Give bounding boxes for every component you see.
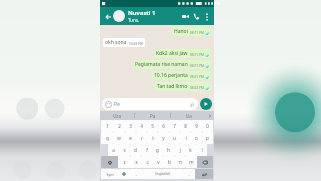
- button[interactable]: e: [125, 132, 136, 144]
- staticText: 08:21 PM: [190, 75, 204, 79]
- staticText: 6: [162, 123, 165, 129]
- button[interactable]: 0: [202, 120, 213, 132]
- button[interactable]: x: [130, 156, 142, 168]
- staticText: d: [134, 147, 137, 153]
- button[interactable]: w: [113, 132, 125, 144]
- button[interactable]: s: [119, 144, 130, 156]
- button[interactable]: l: [196, 144, 207, 156]
- button[interactable]: r: [136, 132, 147, 144]
- button[interactable]: Enter: [195, 169, 213, 179]
- staticText: 4: [140, 123, 143, 129]
- staticText: .: [188, 171, 190, 177]
- staticText: y: [162, 135, 165, 141]
- button[interactable]: 7: [169, 120, 180, 132]
- button[interactable]: Pa: [135, 111, 170, 120]
- button[interactable]: 8: [180, 120, 191, 132]
- staticText: l: [201, 147, 203, 153]
- staticText: 8: [184, 123, 187, 129]
- button[interactable]: 4: [136, 120, 147, 132]
- staticText: Uza: [113, 113, 121, 119]
- staticText: 0: [206, 123, 209, 129]
- staticText: h: [167, 147, 170, 153]
- button[interactable]: g: [152, 144, 163, 156]
- staticText: x: [135, 159, 138, 165]
- button[interactable]: Hanoi: [172, 27, 211, 36]
- button[interactable]: d: [130, 144, 141, 156]
- staticText: u: [173, 135, 176, 141]
- button[interactable]: 9: [191, 120, 202, 132]
- button[interactable]: Contact photo: [113, 10, 125, 22]
- button[interactable]: Pegiamata rise naman: [133, 60, 211, 69]
- button[interactable]: Tan tad lkmo: [155, 82, 211, 91]
- staticText: j: [179, 147, 181, 153]
- button[interactable]: Nuvasti 1: [128, 9, 180, 23]
- button[interactable]: o: [191, 132, 202, 144]
- button[interactable]: Emoji: [102, 98, 198, 110]
- staticText: t: [152, 135, 154, 141]
- button[interactable]: Ua: [171, 111, 206, 120]
- button[interactable]: Uza: [100, 111, 134, 120]
- button[interactable]: 5: [147, 120, 158, 132]
- button[interactable]: Shift: [101, 156, 118, 168]
- button[interactable]: v: [153, 156, 164, 168]
- button[interactable]: m: [186, 156, 197, 168]
- button[interactable]: Sym: [101, 169, 118, 179]
- button[interactable]: More options: [202, 12, 211, 21]
- button[interactable]: 6: [158, 120, 169, 132]
- button[interactable]: Call: [191, 11, 202, 22]
- button[interactable]: Kdk2 aksi jaw: [154, 49, 211, 58]
- staticText: Tan tad lkmo: [157, 83, 188, 90]
- staticText: 3: [129, 123, 132, 129]
- staticText: English(tl): [155, 172, 170, 176]
- button[interactable]: q: [101, 132, 113, 144]
- button[interactable]: 1: [101, 120, 113, 132]
- staticText: Sym: [106, 172, 114, 177]
- button[interactable]: p: [202, 132, 213, 144]
- button[interactable]: okh sona: [103, 38, 145, 47]
- button[interactable]: a: [108, 144, 119, 156]
- button[interactable]: z: [118, 156, 130, 168]
- staticText: 10.16 perjanta: [154, 72, 188, 79]
- button[interactable]: 2: [113, 120, 125, 132]
- staticText: c: [146, 159, 149, 165]
- button[interactable]: c: [142, 156, 153, 168]
- button[interactable]: Send: [200, 98, 212, 110]
- button[interactable]: English(tl): [142, 169, 183, 179]
- button[interactable]: Back: [103, 12, 112, 21]
- button[interactable]: Attach: [188, 100, 196, 108]
- button[interactable]: 10.16 perjanta: [152, 71, 211, 80]
- staticText: 10:43 PM: [129, 42, 143, 46]
- staticText: f: [146, 147, 148, 153]
- staticText: Kdk2 aksi jaw: [156, 50, 188, 57]
- button[interactable]: j: [174, 144, 185, 156]
- staticText: okh sona: [105, 39, 127, 46]
- staticText: s: [123, 147, 126, 153]
- button[interactable]: h: [163, 144, 174, 156]
- staticText: 08:11 PM: [190, 64, 204, 68]
- button[interactable]: More suggestions: [206, 111, 214, 120]
- button[interactable]: u: [169, 132, 180, 144]
- button[interactable]: y: [158, 132, 169, 144]
- button[interactable]: i: [180, 132, 191, 144]
- staticText: 5: [151, 123, 154, 129]
- staticText: a: [112, 147, 115, 153]
- button[interactable]: .: [183, 169, 195, 179]
- button[interactable]: Video call: [180, 11, 191, 22]
- staticText: Pa: [150, 113, 156, 119]
- staticText: e: [129, 135, 132, 141]
- button[interactable]: Settings: [118, 169, 130, 179]
- button[interactable]: n: [175, 156, 186, 168]
- staticText: .: [135, 171, 137, 177]
- button[interactable]: Backspace: [197, 156, 213, 168]
- button[interactable]: f: [141, 144, 152, 156]
- button[interactable]: k: [185, 144, 196, 156]
- button[interactable]: .: [130, 169, 142, 179]
- button[interactable]: 3: [125, 120, 136, 132]
- button[interactable]: Emoji: [104, 100, 112, 108]
- staticText: 9: [195, 123, 198, 129]
- button[interactable]: t: [147, 132, 158, 144]
- button[interactable]: b: [164, 156, 175, 168]
- staticText: q: [106, 135, 109, 141]
- staticText: r: [141, 135, 143, 141]
- staticText: v: [157, 159, 160, 165]
